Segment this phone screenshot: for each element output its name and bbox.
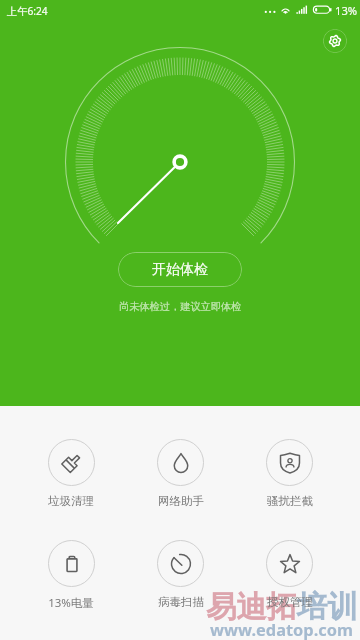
staticText: www.edatop.com — [210, 618, 354, 640]
staticText: 13%电量 — [48, 595, 94, 608]
button[interactable]: 授权管理 — [235, 507, 344, 608]
button[interactable]: Settings — [323, 29, 347, 53]
button[interactable]: 网络助手 — [126, 406, 235, 507]
button[interactable]: 垃圾清理 — [16, 406, 126, 507]
staticText: 尚未体检过，建议立即体检 — [119, 300, 242, 313]
button[interactable]: 病毒扫描 — [126, 507, 235, 608]
button[interactable]: 开始体检 — [118, 252, 242, 287]
staticText: 开始体检 — [152, 261, 208, 279]
staticText: 13% — [335, 3, 358, 18]
staticText: 易迪拓 — [206, 588, 297, 626]
staticText: 授权管理 — [267, 595, 313, 608]
staticText: 培训 — [297, 588, 358, 626]
staticText: 网络助手 — [158, 494, 204, 507]
button[interactable]: 13%电量 — [16, 507, 126, 608]
staticText: 病毒扫描 — [158, 595, 204, 608]
staticText: 上午6:24 — [7, 4, 48, 18]
staticText: 骚扰拦截 — [267, 494, 313, 507]
staticText: 垃圾清理 — [48, 494, 94, 507]
button[interactable]: 骚扰拦截 — [235, 406, 344, 507]
